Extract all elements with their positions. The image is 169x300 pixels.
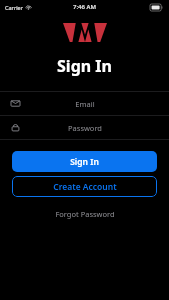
staticText: Sign In xyxy=(70,156,99,168)
button[interactable]: Email xyxy=(0,92,169,115)
other: Password xyxy=(11,123,20,132)
staticText: Email xyxy=(75,99,95,109)
staticText: Sign In xyxy=(57,55,112,77)
staticText: Create Account xyxy=(53,181,117,193)
other: Email xyxy=(11,99,20,108)
staticText: 7:46 AM xyxy=(73,3,96,11)
button[interactable]: Sign In xyxy=(12,151,157,172)
staticText: Carrier xyxy=(5,4,23,11)
button[interactable]: Forgot Password xyxy=(0,206,169,222)
staticText: Forgot Password xyxy=(55,209,115,219)
button[interactable]: Create Account xyxy=(12,176,157,197)
staticText: Password xyxy=(68,123,102,133)
button[interactable]: Password xyxy=(0,116,169,139)
